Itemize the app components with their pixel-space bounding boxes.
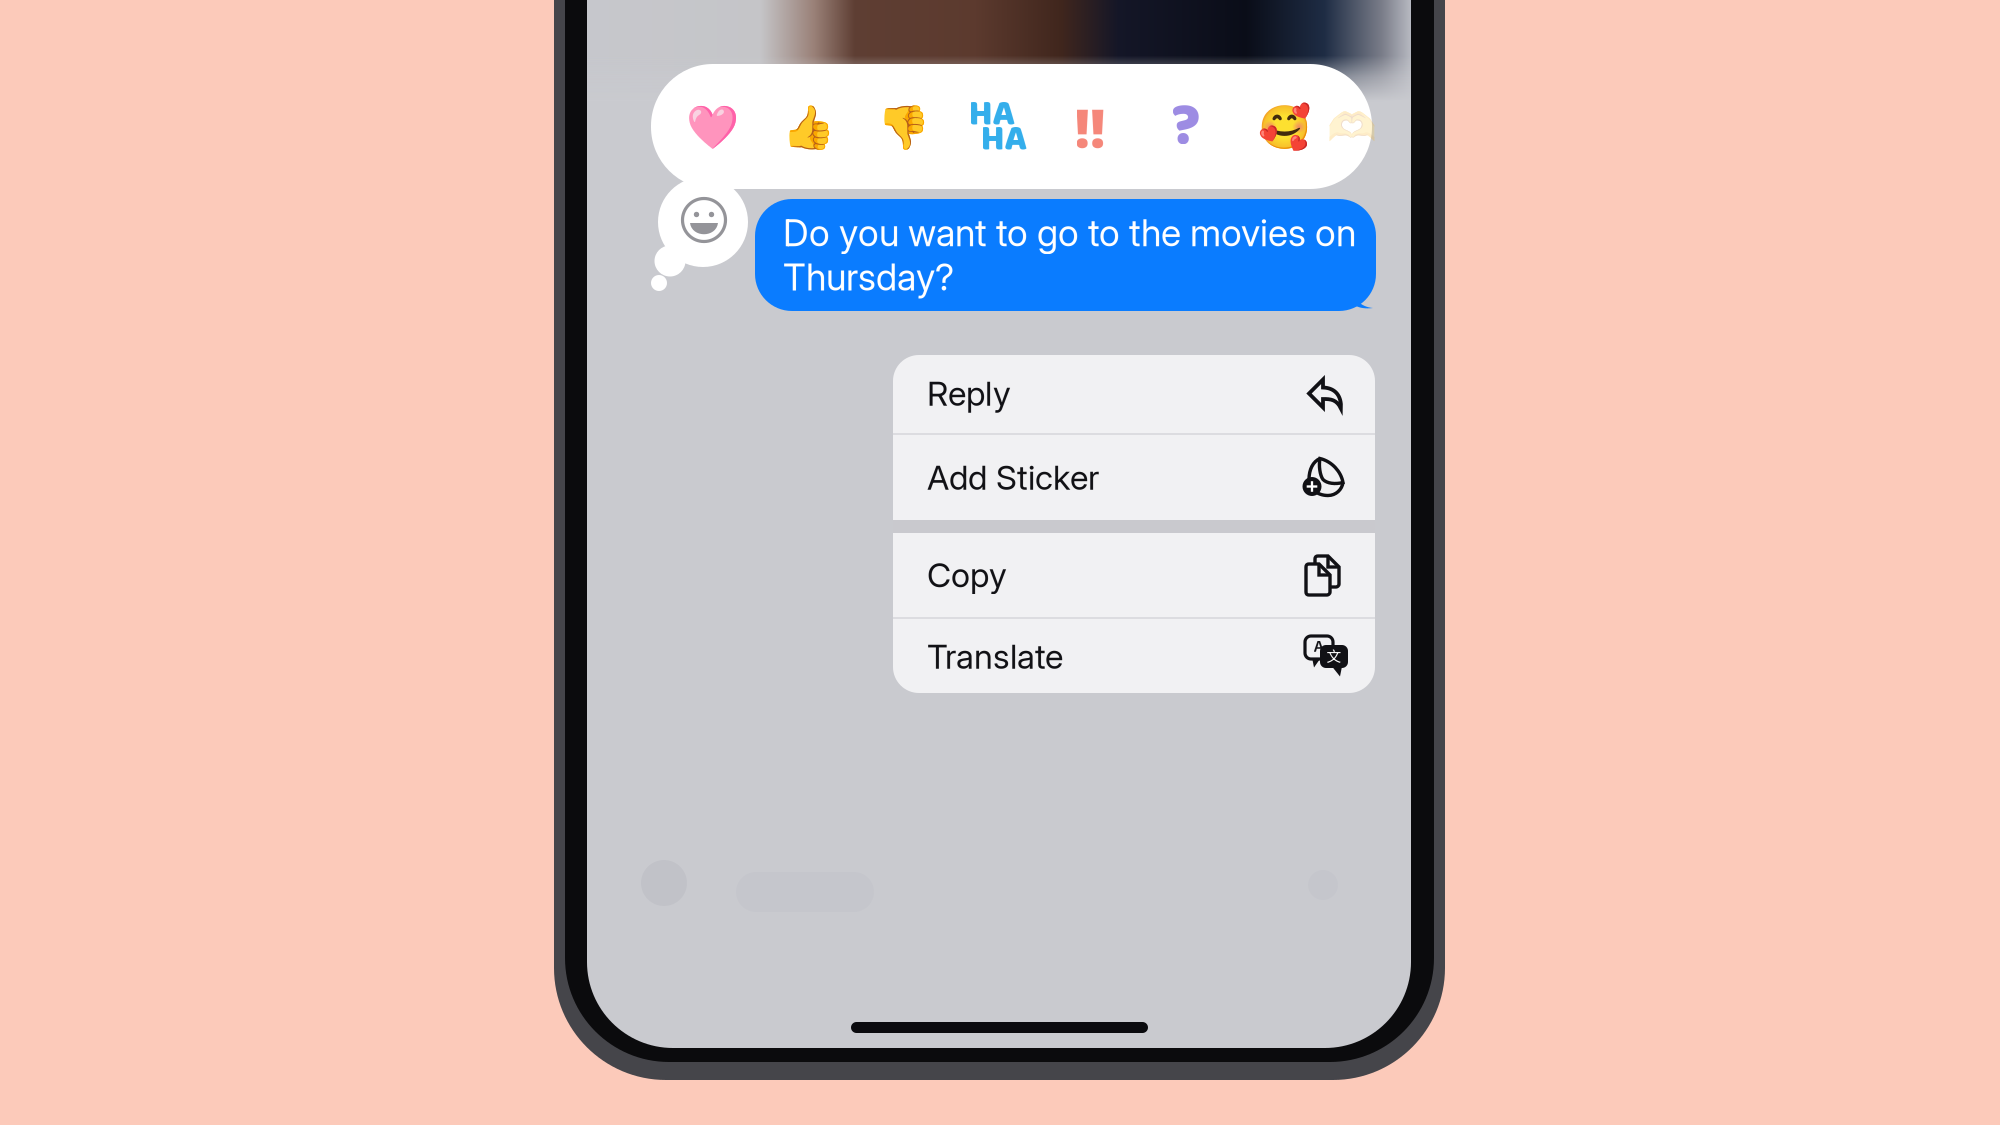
staticText: Reply xyxy=(927,373,1011,414)
button[interactable]: React with thumbs down xyxy=(856,66,950,188)
staticText: ‼ xyxy=(1074,91,1105,163)
staticText: 文 xyxy=(1326,645,1341,666)
button[interactable]: React with thumbs up xyxy=(761,66,855,188)
staticText: Add Sticker xyxy=(927,457,1099,498)
button[interactable]: React with heart xyxy=(665,66,759,188)
button[interactable]: React with Haha xyxy=(951,66,1045,188)
button[interactable]: React with exclamation xyxy=(1043,66,1137,188)
staticText: Copy xyxy=(927,555,1007,595)
staticText: Translate xyxy=(927,636,1063,677)
button[interactable]: React with love xyxy=(1237,66,1331,188)
staticText: 🩷 xyxy=(685,103,738,151)
staticText: 🫶 xyxy=(1327,104,1377,150)
staticText: 👍 xyxy=(781,103,834,151)
button[interactable]: React with question mark xyxy=(1139,66,1233,188)
staticText: HA xyxy=(980,110,1027,168)
staticText: 🥰 xyxy=(1257,103,1310,151)
staticText: 👎 xyxy=(876,103,929,151)
staticText: HA xyxy=(968,85,1015,143)
staticText: ? xyxy=(1171,80,1200,174)
button[interactable]: Add Sticker xyxy=(893,435,1375,520)
button[interactable]: Translate xyxy=(893,619,1375,694)
button[interactable]: Reply xyxy=(893,354,1375,433)
button[interactable]: Copy xyxy=(893,533,1375,617)
staticText: A xyxy=(1313,638,1324,655)
staticText: Do you want to go to the movies on Thurs… xyxy=(783,211,1356,299)
